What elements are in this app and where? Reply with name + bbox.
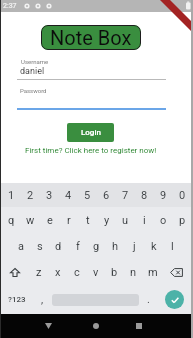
staticText: Username [21, 58, 49, 65]
staticText: w [26, 214, 35, 227]
staticText: n [130, 266, 137, 279]
staticText: 2:37 [3, 2, 17, 10]
staticText: Password [20, 87, 47, 94]
staticText: 7 [122, 189, 129, 202]
button[interactable]: s [30, 233, 49, 259]
button[interactable]: u [116, 207, 135, 233]
button[interactable]: Backspace [162, 259, 191, 285]
button[interactable]: n [124, 259, 143, 285]
button[interactable]: 5 [78, 183, 97, 207]
button[interactable]: 2 [21, 183, 40, 207]
staticText: y [104, 214, 110, 227]
button[interactable]: o [154, 207, 173, 233]
staticText: ?123 [8, 295, 26, 304]
button[interactable]: q [2, 207, 21, 233]
staticText: 9 [160, 189, 167, 202]
staticText: b [111, 266, 118, 279]
button[interactable]: h [106, 233, 125, 259]
button[interactable]: p [173, 207, 192, 233]
staticText: 1 [8, 189, 15, 202]
button[interactable]: 6 [97, 183, 116, 207]
staticText: l [171, 240, 174, 253]
staticText: m [148, 266, 158, 279]
button[interactable]: Shift [0, 259, 29, 285]
staticText: 0 [179, 189, 186, 202]
button[interactable]: Enter [158, 285, 191, 314]
button[interactable]: g [87, 233, 106, 259]
button[interactable]: y [97, 207, 116, 233]
staticText: e [47, 214, 53, 227]
staticText: o [160, 214, 167, 227]
button[interactable]: . [139, 285, 158, 314]
button[interactable]: x [48, 259, 67, 285]
button[interactable]: j [125, 233, 144, 259]
staticText: q [8, 214, 15, 227]
staticText: t [86, 214, 90, 227]
staticText: i [143, 214, 146, 227]
button[interactable]: 4 [59, 183, 78, 207]
button[interactable]: m [143, 259, 162, 285]
staticText: s [37, 240, 43, 253]
staticText: Login [81, 128, 101, 137]
button[interactable]: First time? Click here to register now! [0, 146, 182, 155]
button[interactable]: 8 [135, 183, 154, 207]
staticText: j [133, 240, 136, 253]
staticText: 5 [84, 189, 91, 202]
staticText: a [18, 240, 24, 253]
staticText: f [76, 240, 80, 253]
staticText: First time? Click here to register now! [25, 146, 157, 155]
button[interactable]: Note Box [41, 25, 141, 50]
button[interactable]: b [105, 259, 124, 285]
button[interactable]: c [67, 259, 86, 285]
button[interactable]: f [68, 233, 87, 259]
button[interactable]: Home [84, 314, 108, 338]
staticText: c [74, 266, 80, 279]
button[interactable]: v [86, 259, 105, 285]
button[interactable]: d [49, 233, 68, 259]
staticText: , [41, 293, 44, 306]
button[interactable]: z [29, 259, 48, 285]
staticText: z [36, 266, 42, 279]
staticText: 4 [65, 189, 72, 202]
staticText: . [147, 293, 150, 306]
staticText: p [179, 214, 186, 227]
staticText: Note Box [50, 26, 132, 49]
button[interactable]: 1 [2, 183, 21, 207]
button[interactable]: l [163, 233, 182, 259]
button[interactable]: r [59, 207, 78, 233]
staticText: u [122, 214, 129, 227]
button[interactable]: w [21, 207, 40, 233]
staticText: v [93, 266, 99, 279]
staticText: daniel [20, 66, 45, 77]
button[interactable]: a [11, 233, 30, 259]
button[interactable]: t [78, 207, 97, 233]
button[interactable]: i [135, 207, 154, 233]
button[interactable]: 7 [116, 183, 135, 207]
staticText: 8 [141, 189, 148, 202]
staticText: g [93, 240, 100, 253]
button[interactable]: 3 [40, 183, 59, 207]
staticText: 2 [27, 189, 34, 202]
staticText: r [67, 214, 71, 227]
staticText: x [55, 266, 61, 279]
staticText: k [151, 240, 157, 253]
button[interactable]: Login [67, 123, 114, 142]
button[interactable]: 9 [154, 183, 173, 207]
button[interactable]: 0 [173, 183, 192, 207]
button[interactable]: Back [36, 314, 60, 338]
button[interactable]: e [40, 207, 59, 233]
staticText: h [112, 240, 119, 253]
staticText: d [55, 240, 62, 253]
button[interactable]: , [33, 285, 52, 314]
button[interactable]: Recents [127, 314, 151, 338]
button[interactable]: ?123 [0, 285, 33, 314]
staticText: 3 [46, 189, 53, 202]
button[interactable]: k [144, 233, 163, 259]
staticText: 6 [103, 189, 110, 202]
